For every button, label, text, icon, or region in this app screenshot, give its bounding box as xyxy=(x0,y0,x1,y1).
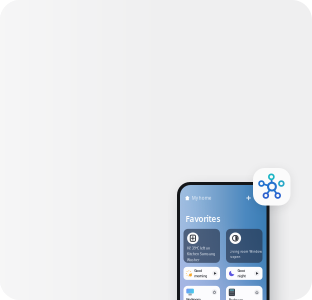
button[interactable]: Good xyxy=(226,267,262,280)
button[interactable]: SmartThings xyxy=(253,168,290,205)
staticText: night xyxy=(237,274,245,278)
button[interactable]: Hi! 39°C left on xyxy=(183,229,220,263)
staticText: My home xyxy=(192,195,212,201)
button[interactable]: Good xyxy=(183,267,220,280)
button[interactable]: Bedroom xyxy=(183,286,220,300)
staticText: Living room Window xyxy=(230,250,262,254)
staticText: is open xyxy=(230,255,241,259)
staticText: morning xyxy=(194,274,207,278)
button[interactable]: Add device xyxy=(245,195,252,201)
staticText: Bedroom xyxy=(229,298,243,300)
staticText: Kitchen Samsung xyxy=(187,252,215,256)
staticText: Hi! 39°C left on xyxy=(187,246,210,250)
staticText: Favorites xyxy=(185,213,220,224)
staticText: Washer xyxy=(187,258,199,262)
button[interactable]: Bedroom xyxy=(226,286,262,300)
button[interactable]: My home xyxy=(185,194,212,202)
staticText: Good xyxy=(194,268,202,273)
staticText: Good xyxy=(237,268,245,273)
button[interactable]: Living room Window xyxy=(226,229,262,263)
staticText: Bedroom xyxy=(186,297,200,300)
